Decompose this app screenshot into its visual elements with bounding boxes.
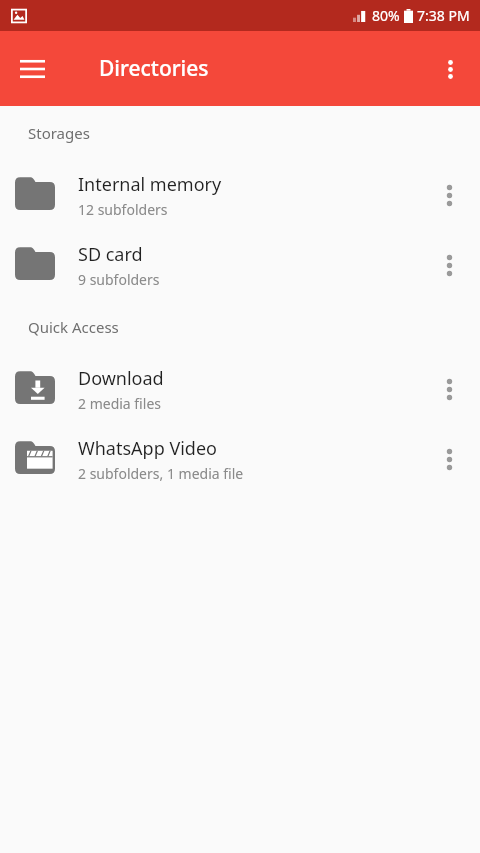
staticText: Directories	[99, 54, 209, 83]
button[interactable]: Open navigation drawer	[8, 45, 56, 93]
button[interactable]: SD card	[0, 230, 480, 300]
staticText: 2 subfolders, 1 media file	[78, 464, 244, 483]
button[interactable]: More options for Download	[423, 363, 475, 415]
staticText: SD card	[78, 242, 143, 267]
button[interactable]: More options	[426, 45, 474, 93]
button[interactable]: More options for WhatsApp Video	[423, 433, 475, 485]
staticText: WhatsApp Video	[78, 436, 217, 461]
staticText: Quick Access	[28, 317, 119, 337]
staticText: 2 media files	[78, 394, 161, 413]
button[interactable]: More options for SD card	[423, 239, 475, 291]
staticText: Storages	[28, 123, 90, 143]
staticText: Download	[78, 366, 164, 391]
button[interactable]: More options for Internal memory	[423, 169, 475, 221]
button[interactable]: WhatsApp Video	[0, 424, 480, 494]
staticText: 7:38 PM	[417, 6, 470, 25]
button[interactable]: Download	[0, 354, 480, 424]
staticText: 12 subfolders	[78, 200, 168, 219]
staticText: 9 subfolders	[78, 270, 160, 289]
staticText: Internal memory	[78, 172, 222, 197]
button[interactable]: Internal memory	[0, 160, 480, 230]
staticText: 80%	[372, 6, 400, 25]
